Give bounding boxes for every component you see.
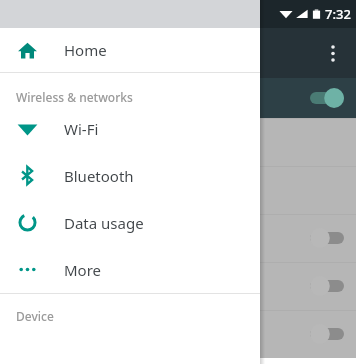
button[interactable]: Bluetooth [0,152,260,199]
staticText: Home [64,40,107,60]
staticText: Data usage [64,213,144,233]
button[interactable] [310,227,344,249]
button[interactable]: More [0,246,260,293]
button[interactable]: More options [316,36,350,70]
staticText: Bluetooth [64,166,134,186]
staticText: 7:32 [325,5,351,23]
button[interactable] [310,323,344,345]
staticText: Wi-Fi [64,119,99,139]
button[interactable]: Home [0,28,260,72]
button[interactable]: Wi-Fi [0,105,260,152]
button[interactable] [310,275,344,297]
staticText: Device [16,308,54,324]
button[interactable] [310,87,344,109]
staticText: Wireless & networks [16,89,133,105]
staticText: More [64,260,102,280]
button[interactable]: Data usage [0,199,260,246]
